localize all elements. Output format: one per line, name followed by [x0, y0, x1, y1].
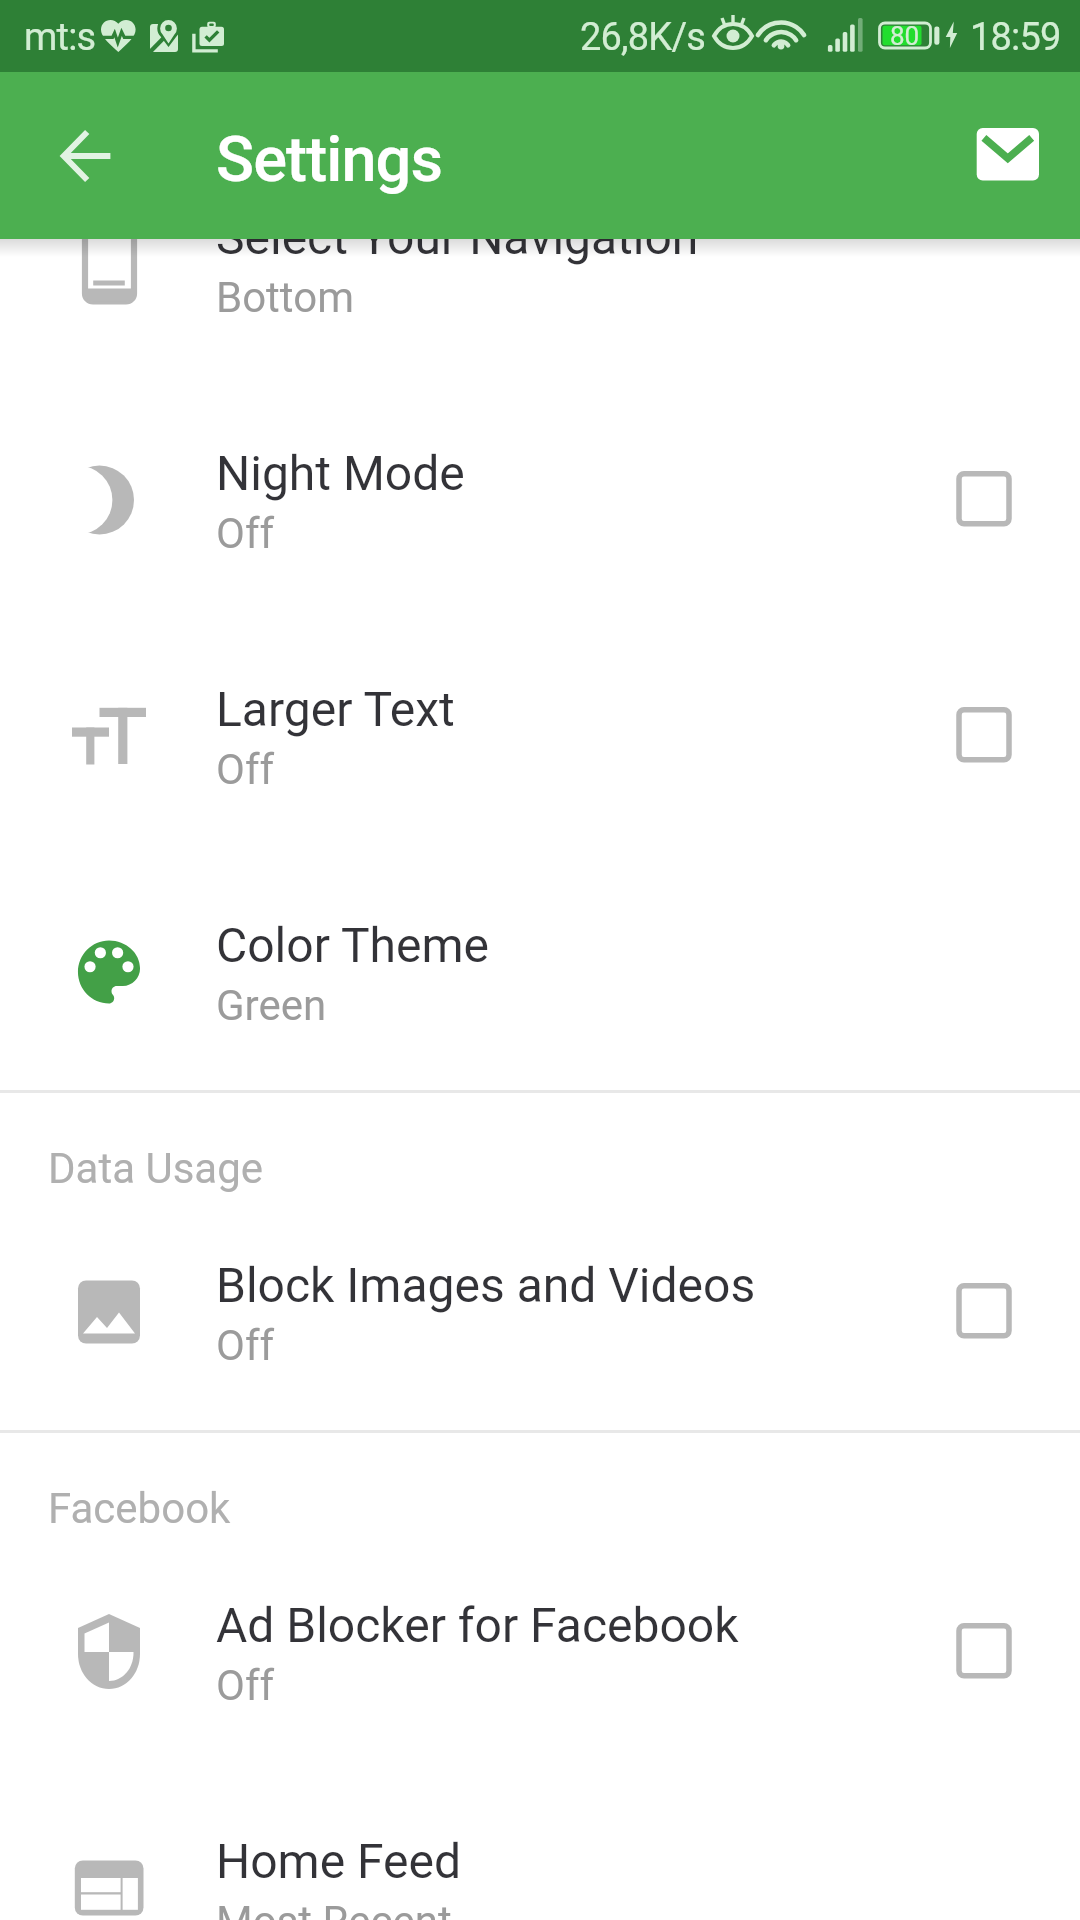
staticText: Color Theme	[216, 917, 489, 973]
staticText: Bottom	[216, 273, 354, 322]
button[interactable]: Email	[960, 107, 1056, 203]
staticText: Select Your Navigation	[216, 209, 699, 265]
staticText: mt:s	[24, 15, 96, 60]
staticText: Settings	[216, 123, 443, 197]
button[interactable]: Ad Blocker for Facebook	[0, 1534, 1080, 1770]
staticText: Off	[216, 1661, 275, 1710]
staticText: Larger Text	[216, 681, 455, 737]
staticText: Ad Blocker for Facebook	[216, 1597, 739, 1653]
button[interactable]: Home Feed	[0, 1770, 1080, 1920]
button[interactable]: Select Your Navigation	[0, 146, 1080, 382]
button[interactable]: Color Theme	[0, 854, 1080, 1090]
staticText: Most Recent	[216, 1897, 452, 1920]
staticText: 80	[890, 21, 920, 51]
staticText: Home Feed	[216, 1833, 462, 1889]
staticText: Off	[216, 745, 275, 794]
staticText: Night Mode	[216, 445, 465, 501]
staticText: Data Usage	[48, 1144, 264, 1193]
button[interactable]: Larger Text	[0, 618, 1080, 854]
button[interactable]: Navigate up	[12, 108, 108, 204]
staticText: Off	[216, 1321, 275, 1370]
staticText: Facebook	[48, 1484, 231, 1533]
staticText: Green	[216, 981, 327, 1030]
staticText: Off	[216, 509, 275, 558]
staticText: 26,8K/s	[580, 15, 706, 60]
staticText: Block Images and Videos	[216, 1257, 756, 1313]
button[interactable]: Block Images and Videos	[0, 1194, 1080, 1430]
button[interactable]: Night Mode	[0, 382, 1080, 618]
staticText: 18:59	[970, 15, 1061, 60]
